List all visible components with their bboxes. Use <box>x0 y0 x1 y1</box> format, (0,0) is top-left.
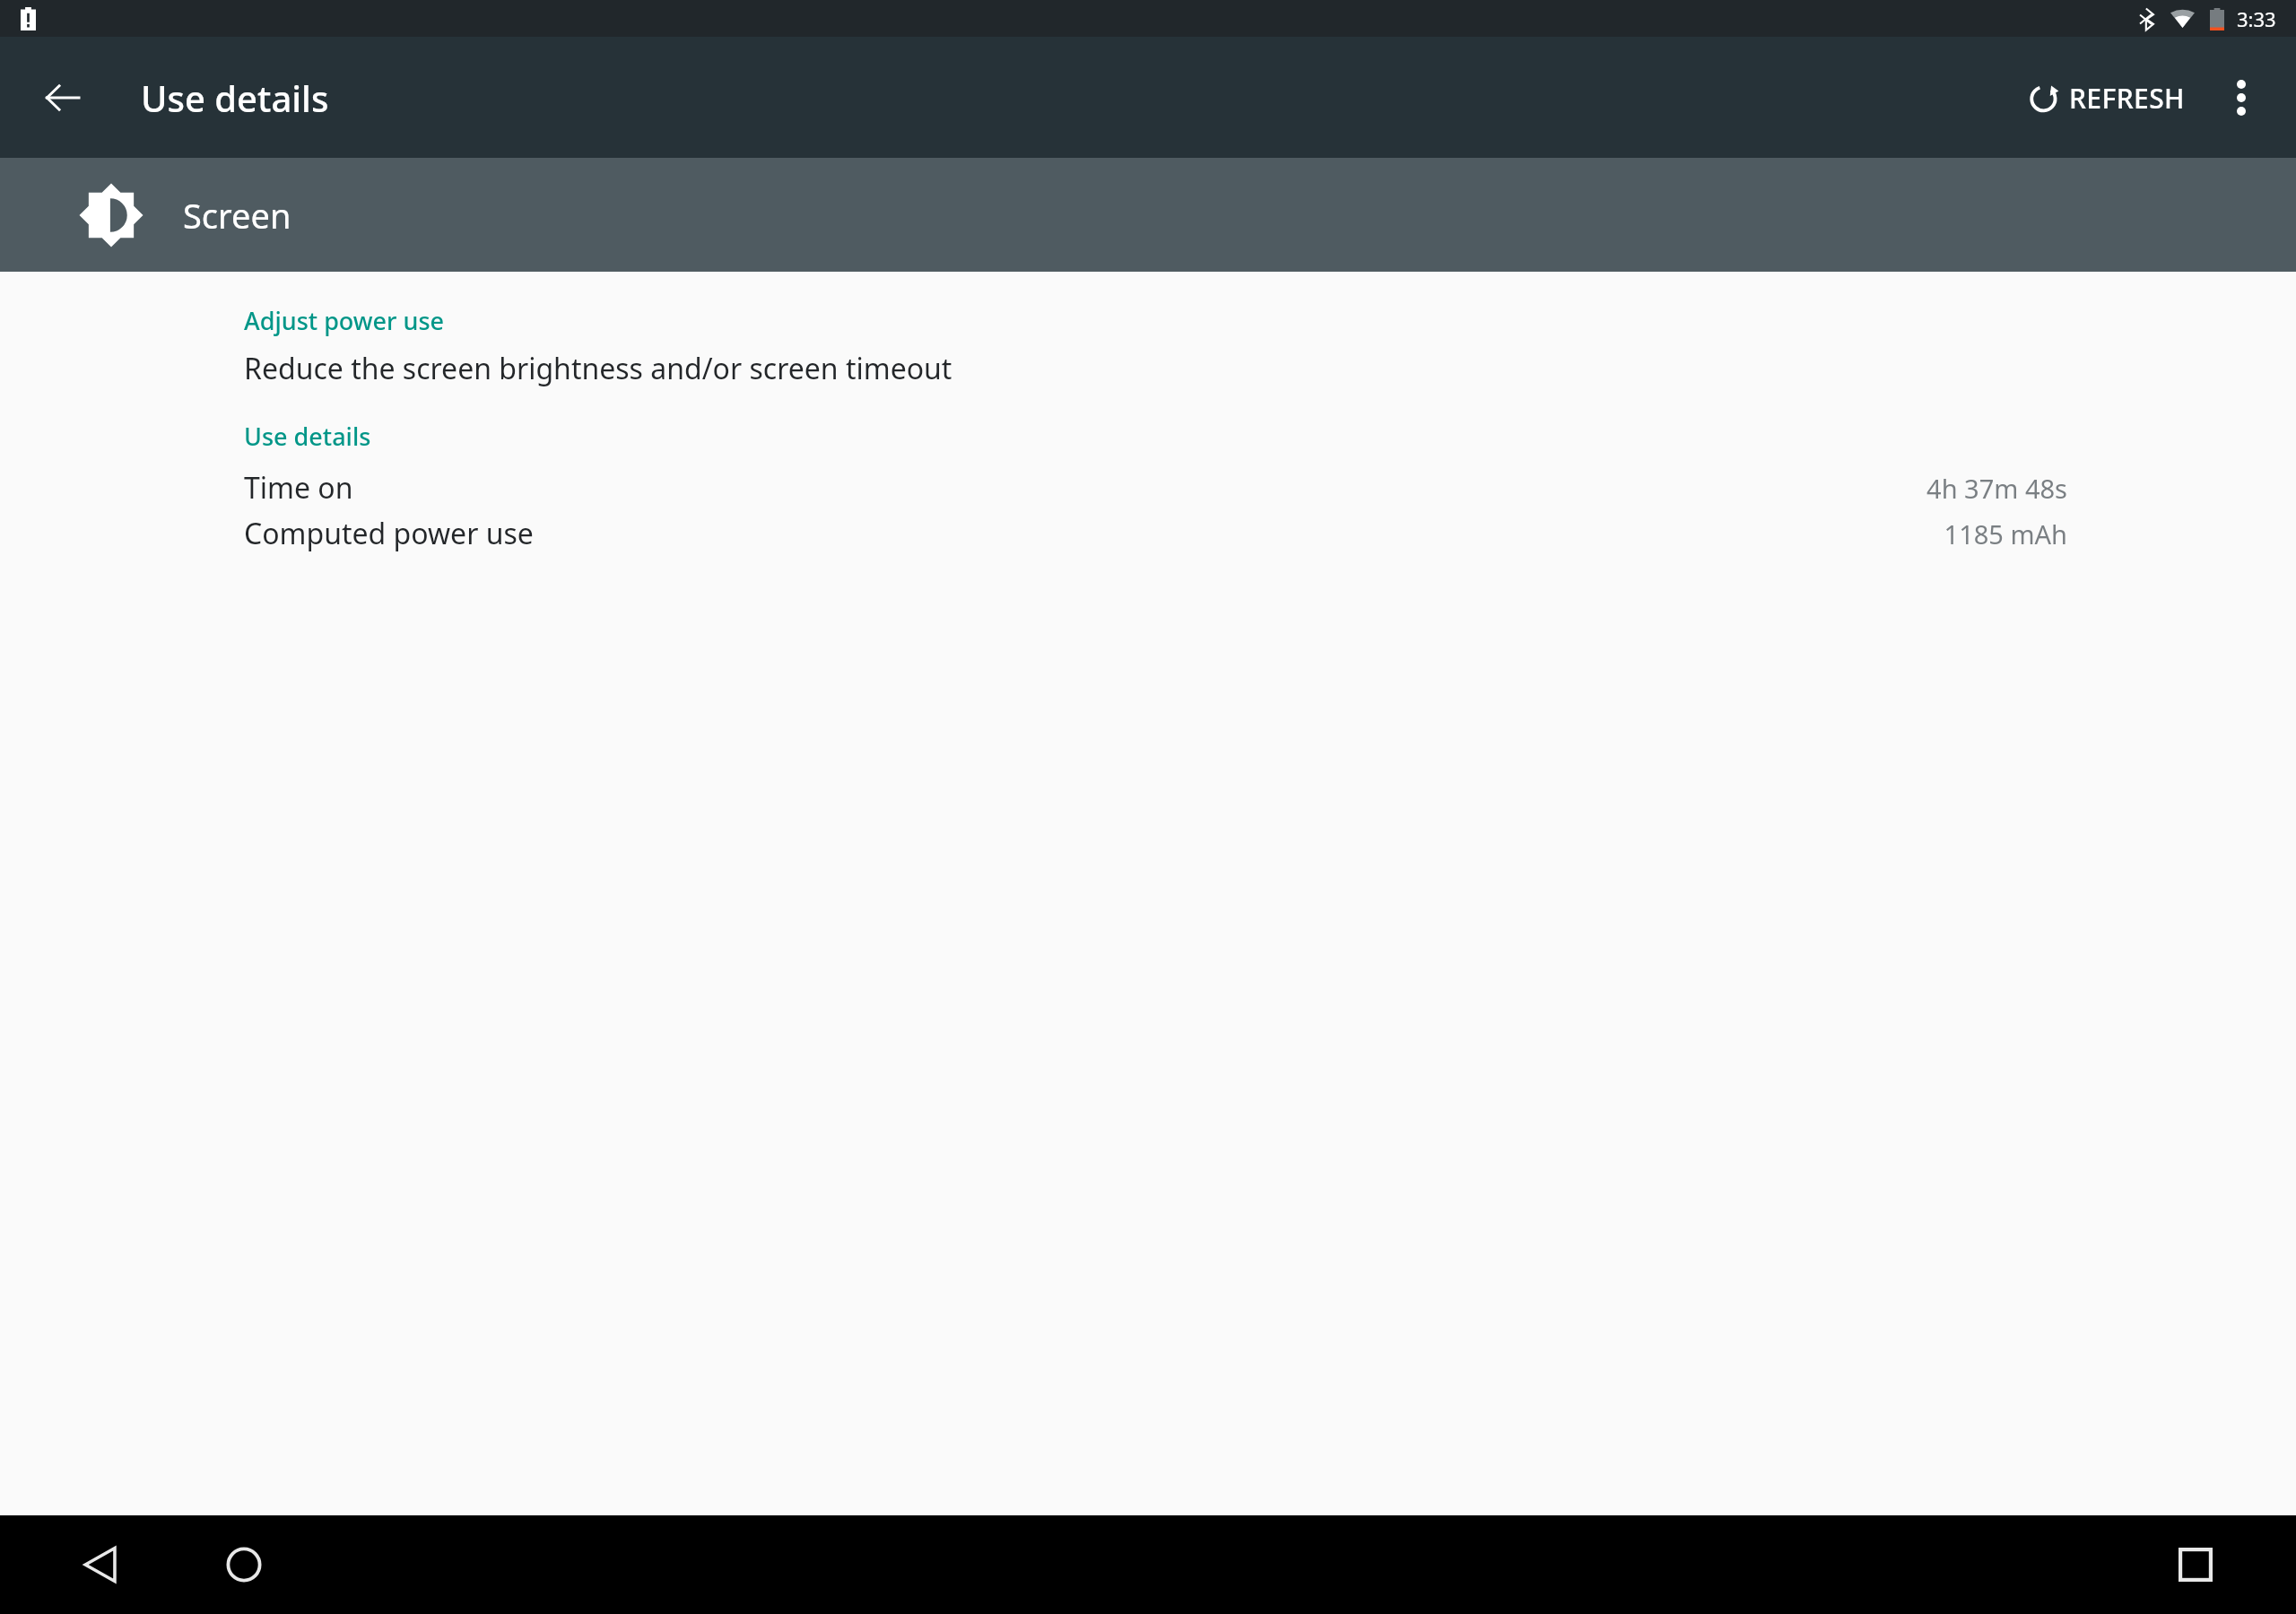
button[interactable]: Home <box>199 1520 289 1610</box>
staticText: Adjust power use <box>244 304 445 337</box>
button[interactable]: Back <box>25 60 100 135</box>
staticText: 3:33 <box>2237 5 2276 32</box>
button[interactable]: Back <box>56 1520 145 1610</box>
staticText: Use details <box>141 74 329 122</box>
staticText: 4h 37m 48s <box>1926 471 2067 506</box>
staticText: Computed power use <box>244 514 534 553</box>
staticText: Time on <box>244 468 353 508</box>
button[interactable]: Time on <box>0 468 2296 508</box>
staticText: REFRESH <box>2069 80 2185 117</box>
button[interactable]: Recent apps <box>2151 1520 2240 1610</box>
button[interactable]: REFRESH <box>2015 65 2197 131</box>
button[interactable]: More options <box>2206 63 2276 133</box>
button[interactable]: Computed power use <box>0 514 2296 553</box>
staticText: Reduce the screen brightness and/or scre… <box>244 349 952 388</box>
staticText: Use details <box>244 420 371 453</box>
staticText: 1185 mAh <box>1944 516 2067 551</box>
staticText: Screen <box>183 192 291 239</box>
